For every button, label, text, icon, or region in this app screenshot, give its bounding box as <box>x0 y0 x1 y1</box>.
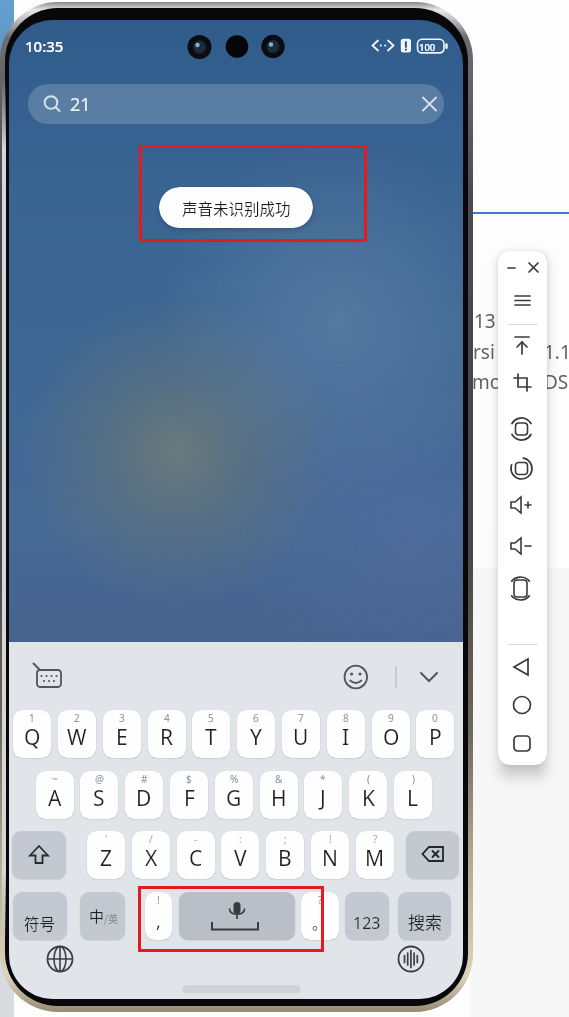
button[interactable]: 7 <box>282 710 320 758</box>
staticText: L <box>407 784 419 813</box>
staticText: 123 <box>353 912 381 934</box>
staticText: 6 <box>253 711 259 725</box>
button[interactable]: ? <box>356 831 394 879</box>
button[interactable]: % <box>215 771 253 819</box>
button[interactable]: 5 <box>192 710 230 758</box>
staticText: # <box>141 772 148 786</box>
staticText: 符号 <box>24 912 56 934</box>
staticText: 声音未识别成功 <box>182 197 291 219</box>
button[interactable]: : <box>221 831 259 879</box>
button[interactable] <box>524 273 544 307</box>
staticText: mo <box>472 369 502 395</box>
staticText: ~ <box>52 772 58 786</box>
staticText: B <box>278 844 292 873</box>
button[interactable] <box>502 421 543 455</box>
button[interactable]: 3 <box>103 710 141 758</box>
staticText: rsi <box>473 339 495 365</box>
button[interactable]: @ <box>80 771 118 819</box>
button[interactable] <box>45 944 75 974</box>
staticText: Z <box>100 844 113 873</box>
button[interactable]: 123 <box>345 892 389 940</box>
button[interactable] <box>502 731 543 765</box>
button[interactable] <box>502 496 543 530</box>
button[interactable] <box>502 311 543 345</box>
button[interactable]: ~ <box>36 771 74 819</box>
button[interactable] <box>502 277 543 311</box>
button[interactable]: 0 <box>416 710 454 758</box>
button[interactable] <box>502 536 543 570</box>
staticText: D <box>136 784 152 813</box>
staticText: Q <box>24 723 41 752</box>
button[interactable]: 2 <box>58 710 96 758</box>
staticText: $ <box>186 772 192 786</box>
button[interactable]: 搜索 <box>398 892 451 940</box>
button[interactable] <box>502 696 543 730</box>
staticText: I <box>342 723 350 752</box>
button[interactable]: * <box>304 771 342 819</box>
staticText: S <box>93 784 105 813</box>
staticText: M <box>365 844 385 873</box>
button[interactable] <box>502 461 543 495</box>
staticText: ) <box>412 772 415 786</box>
staticText: /英 <box>104 911 118 925</box>
staticText: DS <box>544 369 569 395</box>
button[interactable]: 8 <box>327 710 365 758</box>
button[interactable]: ) <box>394 771 432 819</box>
staticText: A <box>48 784 62 813</box>
button[interactable]: 符号 <box>13 892 67 940</box>
button[interactable]: 4 <box>148 710 186 758</box>
button[interactable] <box>396 944 426 974</box>
button[interactable]: # <box>125 771 163 819</box>
staticText: W <box>67 723 87 752</box>
button[interactable]: 1 <box>13 710 51 758</box>
button[interactable]: ; <box>266 831 304 879</box>
staticText: 8 <box>343 711 349 725</box>
button[interactable]: $ <box>170 771 208 819</box>
staticText: ! <box>157 893 160 907</box>
staticText: 2 <box>74 711 80 725</box>
staticText: ; <box>284 832 287 846</box>
button[interactable]: ? <box>301 892 339 940</box>
button[interactable]: ! <box>145 892 172 940</box>
staticText: ' <box>105 832 108 846</box>
staticText: 100 <box>419 41 436 54</box>
staticText: ? <box>373 832 378 846</box>
staticText: R <box>160 723 174 752</box>
staticText: 3 <box>119 711 125 725</box>
button[interactable] <box>179 892 295 940</box>
staticText: / <box>149 832 153 846</box>
button[interactable] <box>502 576 543 610</box>
button[interactable]: ( <box>349 771 387 819</box>
staticText: T <box>205 723 217 752</box>
staticText: , <box>156 909 161 934</box>
button[interactable]: 9 <box>372 710 410 758</box>
button[interactable]: 中 <box>80 892 125 940</box>
button[interactable] <box>409 660 453 700</box>
button[interactable]: - <box>177 831 215 879</box>
staticText: 中 <box>89 905 105 927</box>
staticText: P <box>429 723 442 752</box>
button[interactable]: 6 <box>237 710 275 758</box>
button[interactable] <box>502 651 543 685</box>
button[interactable]: / <box>132 831 170 879</box>
button[interactable]: 声音未识别成功 <box>159 187 313 228</box>
button[interactable] <box>339 660 379 700</box>
button[interactable]: ' <box>87 831 125 879</box>
staticText: 5 <box>208 711 214 725</box>
button[interactable]: & <box>260 771 298 819</box>
staticText: 0 <box>432 711 438 725</box>
button[interactable] <box>502 346 543 380</box>
button[interactable] <box>12 831 66 879</box>
staticText: 21 <box>70 92 91 117</box>
staticText: Y <box>250 723 262 752</box>
staticText: : <box>239 832 242 846</box>
button[interactable] <box>502 381 543 415</box>
button[interactable]: 21 <box>28 84 444 124</box>
staticText: V <box>234 844 247 873</box>
button[interactable] <box>406 831 459 879</box>
button[interactable]: ! <box>311 831 349 879</box>
staticText: ? <box>318 893 323 907</box>
staticText: E <box>116 723 128 752</box>
staticText: F <box>184 784 195 813</box>
button[interactable] <box>19 660 79 700</box>
